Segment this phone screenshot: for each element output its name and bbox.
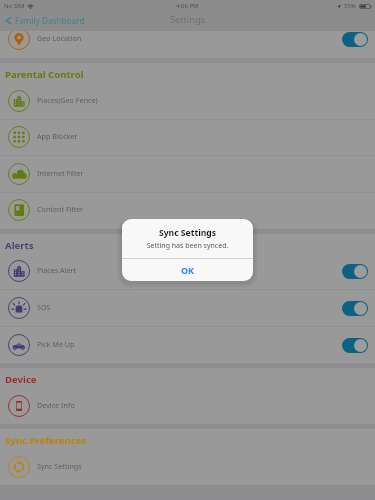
button[interactable]: Content Filter xyxy=(0,192,375,229)
staticText: Family Dashboard xyxy=(15,15,85,26)
staticText: Setting has been synced. xyxy=(122,241,253,251)
button[interactable]: OK xyxy=(122,258,253,281)
staticText: Sync Settings xyxy=(122,227,253,239)
button[interactable]: Device Info xyxy=(0,388,375,425)
staticText: Places Alert xyxy=(37,265,77,275)
button[interactable]: App Blocker xyxy=(0,119,375,156)
staticText: SOS xyxy=(37,302,51,312)
staticText: Parental Control xyxy=(5,68,84,81)
staticText: App Blocker xyxy=(37,131,78,141)
button[interactable]: SOS xyxy=(0,290,375,327)
staticText: Settings xyxy=(170,13,205,26)
button[interactable]: Sync Settings xyxy=(0,449,375,486)
staticText: Internet Filter xyxy=(37,168,84,178)
staticText: 4:06 PM xyxy=(176,2,199,10)
staticText: 55% xyxy=(344,2,356,10)
staticText: Pick Me Up xyxy=(37,339,75,349)
button[interactable]: Toggle xyxy=(342,338,368,353)
button[interactable]: Places Alert xyxy=(0,253,375,290)
button[interactable]: Toggle xyxy=(342,264,368,279)
button[interactable]: Places(Geo Fence) xyxy=(0,83,375,120)
button[interactable]: Geo Location xyxy=(0,21,375,58)
button[interactable]: Toggle xyxy=(342,32,368,47)
staticText: Device xyxy=(5,373,37,386)
staticText: Content Filter xyxy=(37,204,83,214)
staticText: No SIM xyxy=(4,2,25,10)
staticText: Geo Location xyxy=(37,33,82,43)
staticText: Sync Settings xyxy=(37,461,82,471)
button[interactable]: Internet Filter xyxy=(0,156,375,193)
button[interactable]: Family Dashboard xyxy=(5,15,85,26)
button[interactable]: Pick Me Up xyxy=(0,327,375,364)
staticText: Device Info xyxy=(37,400,75,410)
staticText: OK xyxy=(181,264,195,276)
staticText: Alerts xyxy=(5,239,34,252)
button[interactable]: Toggle xyxy=(342,301,368,316)
staticText: Places(Geo Fence) xyxy=(37,95,98,105)
staticText: Sync Preferences xyxy=(5,434,87,447)
